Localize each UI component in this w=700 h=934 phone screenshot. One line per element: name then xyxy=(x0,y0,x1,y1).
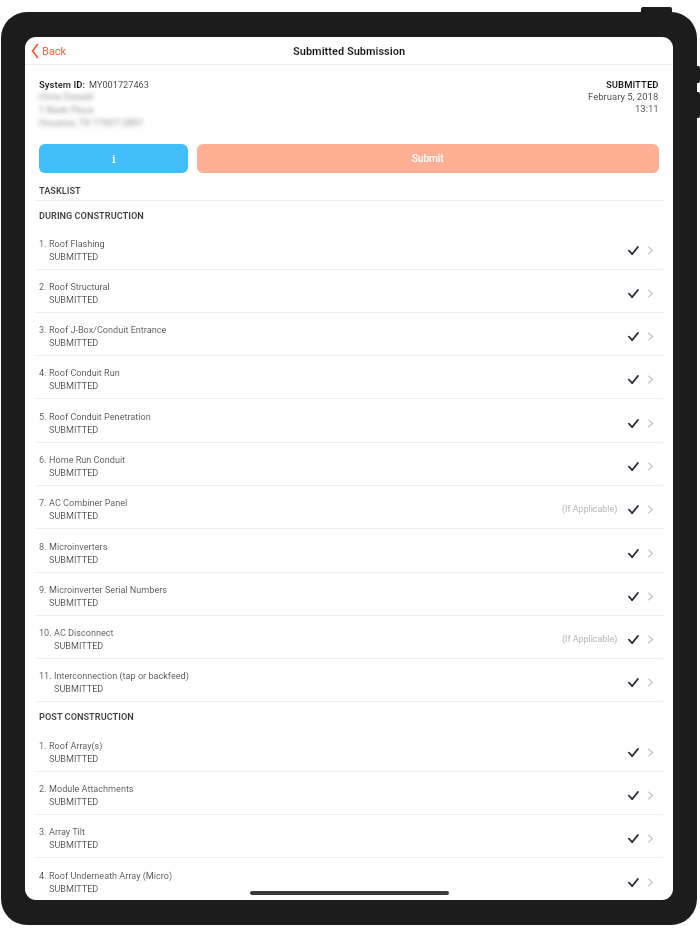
other: Completed xyxy=(627,462,638,471)
staticText: 4. xyxy=(39,871,47,882)
other: Completed xyxy=(627,678,638,687)
staticText: Roof J-Box/Conduit Entrance xyxy=(49,325,167,336)
staticText: SUBMITTED xyxy=(49,425,99,436)
staticText: Microinverters xyxy=(49,542,108,553)
staticText: SUBMITTED xyxy=(49,252,99,263)
staticText: AC Combiner Panel xyxy=(49,498,128,509)
button[interactable]: 4. xyxy=(25,859,673,900)
staticText: System ID: xyxy=(39,79,86,90)
staticText: 2. xyxy=(39,784,47,795)
staticText: Back xyxy=(42,45,67,58)
button[interactable]: 7. xyxy=(25,486,673,529)
staticText: 3. xyxy=(39,827,47,838)
staticText: SUBMITTED xyxy=(54,684,104,695)
staticText: Module Attachments xyxy=(49,784,134,795)
staticText: AC Disconnect xyxy=(54,628,114,639)
button[interactable]: Back xyxy=(25,40,73,62)
staticText: SUBMITTED xyxy=(49,468,99,479)
button[interactable]: 10. xyxy=(25,616,673,659)
staticText: TASKLIST xyxy=(39,185,81,196)
button[interactable]: i xyxy=(39,144,188,173)
button[interactable]: 9. xyxy=(25,573,673,616)
staticText: SUBMITTED xyxy=(49,797,99,808)
staticText: DURING CONSTRUCTION xyxy=(39,210,144,221)
staticText: 1. xyxy=(39,239,47,250)
staticText: SUBMITTED xyxy=(49,555,99,566)
staticText: Microinverter Serial Numbers xyxy=(49,585,168,596)
staticText: 4. xyxy=(39,368,47,379)
staticText: 13:11 xyxy=(635,103,659,114)
staticText: Roof Flashing xyxy=(49,239,105,250)
staticText: Submit xyxy=(412,153,444,165)
staticText: 7. xyxy=(39,498,47,509)
staticText: February 5, 2018 xyxy=(588,91,659,102)
other: Completed xyxy=(627,878,638,887)
staticText: Roof Array(s) xyxy=(49,741,103,752)
staticText: SUBMITTED xyxy=(49,511,99,522)
staticText: 11. xyxy=(39,671,52,682)
staticText: Home Run Conduit xyxy=(49,455,126,466)
other: Completed xyxy=(627,592,638,601)
staticText: 6. xyxy=(39,455,47,466)
staticText: i xyxy=(112,151,116,166)
button[interactable]: 3. xyxy=(25,313,673,356)
staticText: Roof Conduit Penetration xyxy=(49,412,151,423)
other: Completed xyxy=(627,419,638,428)
button[interactable]: 3. xyxy=(25,815,673,858)
staticText: 9. xyxy=(39,585,47,596)
staticText: Submitted Submission xyxy=(293,45,406,58)
other: Completed xyxy=(627,246,638,255)
staticText: Roof Conduit Run xyxy=(49,368,120,379)
other: Completed xyxy=(627,549,638,558)
button[interactable]: 8. xyxy=(25,530,673,573)
other: Completed xyxy=(627,505,638,514)
staticText: (If Applicable) xyxy=(562,634,618,644)
staticText: SUBMITTED xyxy=(49,840,99,851)
staticText: 1. xyxy=(39,741,47,752)
staticText: SUBMITTED xyxy=(49,381,99,392)
staticText: 5. xyxy=(39,412,47,423)
button[interactable]: Submit xyxy=(197,144,659,173)
staticText: Chris Donald xyxy=(39,91,93,102)
staticText: SUBMITTED xyxy=(49,754,99,765)
other: Completed xyxy=(627,375,638,384)
other: Completed xyxy=(627,635,638,644)
staticText: SUBMITTED xyxy=(54,641,104,652)
staticText: SUBMITTED xyxy=(606,79,659,90)
button[interactable]: 1. xyxy=(25,729,673,772)
button[interactable]: 2. xyxy=(25,772,673,815)
button[interactable]: 5. xyxy=(25,400,673,443)
staticText: 10. xyxy=(39,628,52,639)
staticText: 8. xyxy=(39,542,47,553)
other: Completed xyxy=(627,834,638,843)
staticText: POST CONSTRUCTION xyxy=(39,711,134,722)
staticText: SUBMITTED xyxy=(49,295,99,306)
staticText: MY001727463 xyxy=(89,79,149,90)
staticText: 2. xyxy=(39,282,47,293)
other: Completed xyxy=(627,791,638,800)
staticText: SUBMITTED xyxy=(49,884,99,895)
button[interactable]: 11. xyxy=(25,659,673,702)
staticText: (If Applicable) xyxy=(562,504,618,514)
staticText: 1 Bank Plaza xyxy=(39,104,94,115)
staticText: Houston, TX 77027-3801 xyxy=(39,117,144,128)
staticText: SUBMITTED xyxy=(49,338,99,349)
button[interactable]: 2. xyxy=(25,270,673,313)
button[interactable]: 1. xyxy=(25,227,673,270)
other: Completed xyxy=(627,289,638,298)
staticText: Roof Underneath Array (Micro) xyxy=(49,871,173,882)
staticText: SUBMITTED xyxy=(49,598,99,609)
button[interactable]: 6. xyxy=(25,443,673,486)
staticText: Interconnection (tap or backfeed) xyxy=(54,671,189,682)
other: Completed xyxy=(627,748,638,757)
button[interactable]: 4. xyxy=(25,356,673,399)
staticText: Roof Structural xyxy=(49,282,110,293)
staticText: 3. xyxy=(39,325,47,336)
staticText: Array Tilt xyxy=(49,827,86,838)
other: Completed xyxy=(627,332,638,341)
